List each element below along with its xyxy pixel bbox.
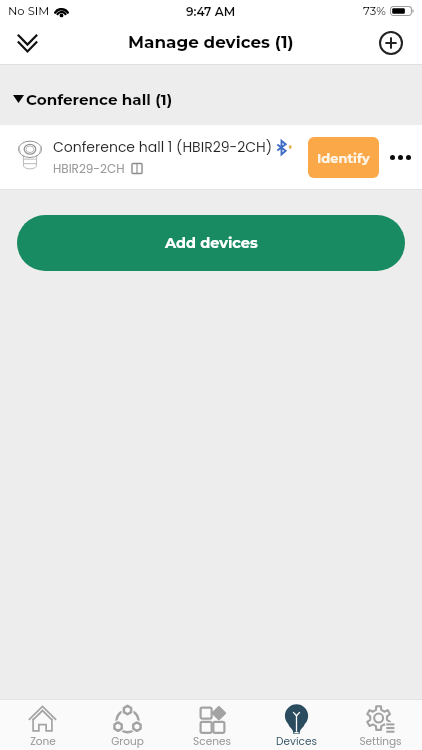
staticText: Manage devices (1): [128, 32, 294, 52]
button[interactable]: Group: [85, 700, 170, 750]
staticText: 73%: [363, 4, 386, 18]
button[interactable]: Add devices: [17, 215, 405, 271]
button[interactable]: Scenes: [170, 700, 254, 750]
staticText: Scenes: [193, 734, 231, 749]
button[interactable]: Devices: [254, 700, 338, 750]
staticText: Conference hall (1): [26, 90, 173, 109]
staticText: Conference hall 1 (HBIR29-2CH): [53, 137, 273, 157]
button[interactable]: Settings: [338, 700, 422, 750]
button[interactable]: Identify: [308, 137, 379, 178]
staticText: Devices: [276, 734, 317, 749]
staticText: Add devices: [165, 234, 258, 252]
staticText: Group: [111, 734, 144, 749]
staticText: Settings: [359, 734, 402, 749]
staticText: Identify: [317, 150, 370, 166]
staticText: 9:47 AM: [186, 4, 236, 19]
button[interactable]: Add device: [360, 22, 422, 64]
button[interactable]: Zone: [0, 700, 85, 750]
button[interactable]: Conference hall 1 (HBIR29-2CH): [0, 125, 422, 189]
button[interactable]: Conference hall (1): [0, 65, 422, 125]
staticText: HBIR29-2CH: [53, 160, 125, 177]
button[interactable]: Collapse: [0, 22, 55, 64]
button[interactable]: More options: [379, 132, 422, 182]
staticText: No SIM: [8, 4, 50, 18]
staticText: Zone: [30, 734, 56, 749]
